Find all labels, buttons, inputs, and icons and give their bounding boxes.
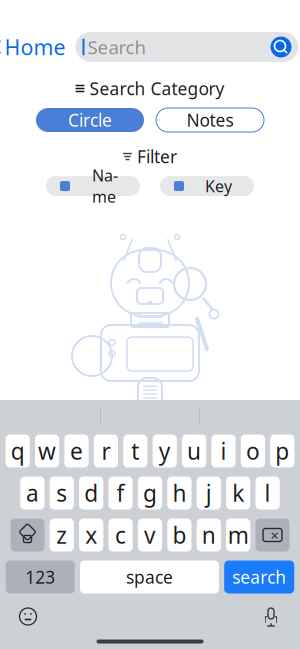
button[interactable]: a — [20, 476, 44, 509]
staticText: d — [84, 478, 98, 508]
staticText: k — [232, 478, 244, 508]
button[interactable]: h — [167, 476, 191, 509]
button[interactable]: 123 — [6, 560, 75, 593]
button[interactable]: g — [138, 476, 162, 509]
button[interactable]: d — [79, 476, 103, 509]
staticText: n — [202, 520, 216, 550]
staticText: Key — [205, 175, 232, 197]
button[interactable]: x — [79, 518, 103, 551]
button[interactable]: Dictation — [262, 601, 300, 631]
staticText: z — [56, 520, 67, 550]
button[interactable]: c — [108, 518, 133, 551]
button[interactable]: Circle — [36, 108, 144, 132]
staticText: Filter — [137, 145, 177, 168]
staticText: l — [265, 478, 271, 508]
staticText: t — [131, 436, 139, 466]
button[interactable]: Key — [160, 176, 254, 196]
button[interactable]: l — [255, 476, 280, 509]
button[interactable]: p — [270, 434, 294, 467]
button[interactable]: i — [211, 434, 236, 467]
staticText: s — [56, 478, 67, 508]
button[interactable]: search — [224, 560, 294, 593]
button[interactable]: t — [123, 434, 147, 467]
staticText: c — [115, 520, 126, 550]
button[interactable]: b — [167, 518, 191, 551]
button[interactable]: w — [35, 434, 59, 467]
staticText: p — [275, 436, 289, 466]
staticText: m — [228, 520, 249, 550]
staticText: Notes — [186, 108, 233, 131]
staticText: Search — [87, 35, 146, 59]
button[interactable]: Home — [0, 27, 65, 67]
staticText: a — [26, 478, 39, 508]
staticText: j — [206, 478, 212, 508]
staticText: i — [220, 436, 226, 466]
staticText: Circle — [68, 108, 112, 131]
button[interactable]: s — [50, 476, 74, 509]
staticText: u — [187, 436, 201, 466]
button[interactable]: space — [80, 560, 219, 593]
button[interactable]: v — [138, 518, 162, 551]
button[interactable]: r — [94, 434, 118, 467]
staticText: r — [101, 436, 110, 466]
staticText: Home — [4, 33, 65, 61]
button[interactable]: y — [153, 434, 177, 467]
button[interactable]: o — [241, 434, 265, 467]
button[interactable]: k — [226, 476, 250, 509]
button[interactable]: f — [108, 476, 133, 509]
staticText: f — [117, 478, 125, 508]
button[interactable]: e — [64, 434, 89, 467]
button[interactable]: Emoji — [0, 602, 38, 630]
staticText: e — [70, 436, 83, 466]
staticText: h — [172, 478, 186, 508]
button[interactable]: j — [197, 476, 221, 509]
button[interactable]: m — [226, 518, 250, 551]
button[interactable]: Name — [46, 176, 140, 196]
staticText: Name — [92, 165, 118, 207]
button[interactable]: n — [197, 518, 221, 551]
staticText: x — [85, 520, 97, 550]
staticText: y — [159, 436, 171, 466]
staticText: 123 — [25, 565, 55, 588]
staticText: b — [172, 520, 186, 550]
staticText: search — [232, 565, 286, 588]
staticText: o — [246, 436, 260, 466]
staticText: × — [270, 525, 278, 545]
button[interactable]: Search — [270, 36, 291, 57]
staticText: g — [143, 478, 157, 508]
staticText: q — [11, 436, 25, 466]
staticText: w — [38, 436, 56, 466]
staticText: v — [144, 520, 156, 550]
button[interactable]: Delete — [255, 518, 289, 551]
staticText: Search Category — [89, 77, 224, 100]
button[interactable]: q — [6, 434, 30, 467]
button[interactable]: Shift — [10, 518, 44, 551]
button[interactable]: Notes — [156, 108, 264, 132]
staticText: space — [126, 565, 173, 588]
button[interactable]: z — [50, 518, 74, 551]
button[interactable]: u — [182, 434, 206, 467]
